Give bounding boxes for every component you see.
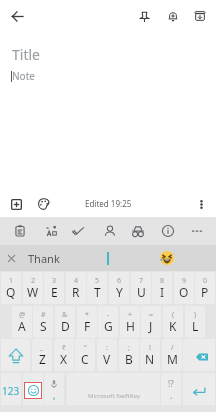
button[interactable]: 1	[1, 272, 21, 304]
staticText: B	[125, 351, 133, 367]
staticText: D	[61, 318, 70, 334]
button[interactable]: Back	[5, 4, 29, 28]
button[interactable]: 2	[23, 272, 43, 304]
staticText: Z	[39, 351, 46, 367]
staticText: 6	[117, 276, 122, 286]
staticText: #	[41, 310, 46, 320]
staticText: R	[72, 284, 80, 300]
button[interactable]: :	[97, 339, 117, 371]
button[interactable]: Space	[67, 373, 160, 405]
button[interactable]: Colour	[33, 193, 55, 215]
button[interactable]: )	[185, 306, 205, 338]
button[interactable]: 0	[195, 272, 215, 304]
staticText: 2	[31, 276, 36, 286]
staticText: +	[128, 310, 133, 320]
button[interactable]: +	[120, 306, 140, 338]
button[interactable]: /	[162, 339, 182, 371]
staticText: H	[126, 318, 135, 334]
staticText: Title	[12, 45, 40, 64]
staticText: Y	[116, 284, 123, 300]
button[interactable]: 8	[152, 272, 172, 304]
button[interactable]: Numbers	[1, 373, 21, 405]
button[interactable]: Enter	[183, 373, 215, 405]
staticText: L	[192, 318, 199, 334]
staticText: 3	[52, 276, 57, 286]
button[interactable]: !	[140, 339, 160, 371]
staticText: 1	[9, 276, 14, 286]
staticText: J	[149, 318, 153, 334]
staticText: E	[51, 284, 58, 300]
staticText: Edited 19:25	[85, 198, 132, 209]
button[interactable]: Reminder	[161, 4, 185, 28]
staticText: :	[106, 343, 108, 353]
button[interactable]: *	[77, 306, 97, 338]
staticText: A	[18, 318, 26, 334]
staticText: 8	[160, 276, 165, 286]
button[interactable]: Punctuation	[161, 373, 181, 405]
button[interactable]: More	[186, 220, 208, 242]
button[interactable]: (	[163, 306, 183, 338]
staticText: I	[160, 284, 165, 300]
staticText: ,	[53, 389, 56, 401]
button[interactable]: =	[141, 306, 161, 338]
button[interactable]: 4	[66, 272, 86, 304]
button[interactable]: "	[75, 339, 95, 371]
button[interactable]: ;	[119, 339, 139, 371]
staticText: X	[60, 351, 68, 367]
button[interactable]: Incognito	[127, 220, 149, 242]
button[interactable]: 7	[131, 272, 151, 304]
staticText: M	[167, 351, 178, 367]
staticText: @	[19, 310, 26, 320]
button[interactable]: 5	[87, 272, 107, 304]
button[interactable]: #	[33, 306, 53, 338]
button[interactable]: Archive	[188, 4, 212, 28]
button[interactable]: Shift	[1, 339, 30, 371]
button[interactable]: Clipboard	[9, 220, 31, 242]
button[interactable]: Spell check	[67, 220, 89, 242]
button[interactable]: Voice input	[44, 373, 64, 405]
staticText: "	[84, 343, 87, 353]
button[interactable]: &	[55, 306, 75, 338]
button[interactable]: Backspace	[183, 339, 215, 371]
button[interactable]: Account	[99, 220, 121, 242]
button[interactable]: Emoji suggestion	[154, 245, 180, 271]
staticText: K	[169, 318, 177, 334]
staticText: ;	[128, 343, 130, 353]
button[interactable]: 6	[109, 272, 129, 304]
staticText: Microsoft SwiftKey	[88, 392, 140, 400]
staticText: S	[40, 318, 47, 334]
staticText: 0	[203, 276, 208, 286]
staticText: (	[172, 310, 175, 320]
button[interactable]: Translate	[41, 220, 63, 242]
button[interactable]: _	[32, 339, 52, 371]
button[interactable]: Add	[5, 193, 27, 215]
staticText: G	[104, 318, 113, 334]
staticText: F	[84, 318, 91, 334]
button[interactable]: -	[98, 306, 118, 338]
staticText: ₹	[62, 343, 67, 353]
button[interactable]: Emoji	[23, 373, 43, 405]
staticText: =	[149, 310, 154, 320]
staticText: V	[103, 351, 111, 367]
button[interactable]: @	[12, 306, 32, 338]
button[interactable]: ₹	[54, 339, 74, 371]
staticText: N	[145, 351, 155, 367]
button[interactable]: 9	[174, 272, 194, 304]
staticText: /	[171, 343, 174, 353]
staticText: W	[27, 284, 39, 300]
button[interactable]: 3	[44, 272, 64, 304]
staticText: .	[170, 389, 173, 401]
staticText: -	[107, 310, 110, 320]
staticText: P	[201, 284, 209, 300]
staticText: C	[81, 351, 89, 367]
staticText: !?	[168, 378, 174, 389]
staticText: 5	[95, 276, 100, 286]
staticText: )	[194, 310, 197, 320]
button[interactable]: More options	[190, 193, 212, 215]
button[interactable]: Thank	[22, 245, 96, 271]
staticText: Q	[6, 284, 16, 300]
staticText: Note	[12, 69, 35, 83]
button[interactable]: Dismiss suggestion	[3, 250, 19, 266]
button[interactable]: Info	[157, 220, 179, 242]
button[interactable]: Pin	[132, 4, 156, 28]
